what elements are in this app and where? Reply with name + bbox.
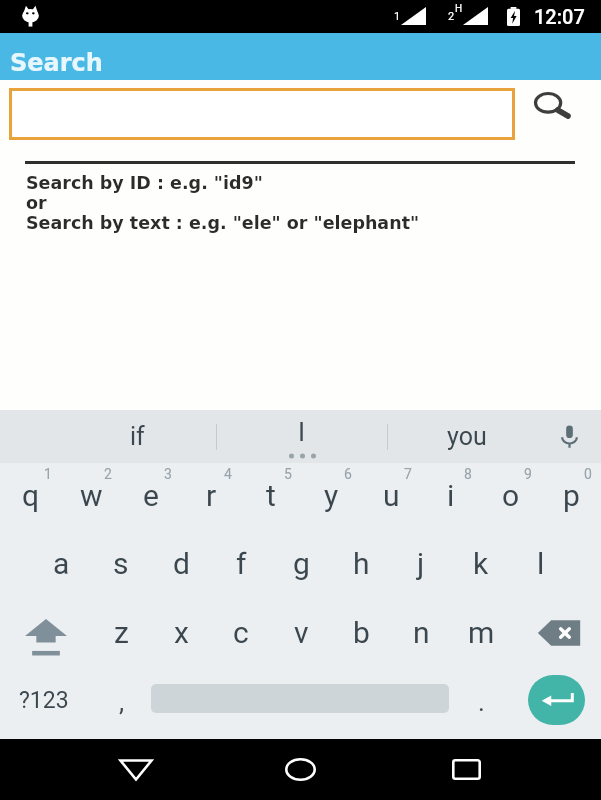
button[interactable]: Shift xyxy=(0,601,91,670)
staticText: or xyxy=(26,193,47,213)
staticText: c xyxy=(233,615,249,650)
button[interactable]: if xyxy=(0,410,216,463)
button[interactable]: Enter xyxy=(506,670,601,739)
staticText: 1 xyxy=(394,10,401,23)
button[interactable]: v xyxy=(271,601,331,670)
button[interactable]: . xyxy=(446,670,506,739)
button[interactable]: b xyxy=(331,601,391,670)
staticText: l xyxy=(537,546,545,581)
button[interactable]: s xyxy=(91,532,151,601)
button[interactable]: f xyxy=(211,532,271,601)
button[interactable]: y xyxy=(301,463,361,532)
staticText: . xyxy=(478,687,485,717)
staticText: w xyxy=(80,478,103,513)
staticText: 9 xyxy=(524,466,532,482)
button[interactable]: Recents xyxy=(436,739,497,800)
button[interactable]: Space xyxy=(148,670,446,739)
staticText: 1 xyxy=(44,466,52,482)
button[interactable]: o xyxy=(481,463,541,532)
button[interactable]: n xyxy=(391,601,451,670)
staticText: q xyxy=(22,478,40,513)
button[interactable]: Search xyxy=(528,90,576,138)
button[interactable]: t xyxy=(241,463,301,532)
button[interactable]: Home xyxy=(270,739,331,800)
staticText: 3 xyxy=(164,466,172,482)
staticText: n xyxy=(413,615,430,650)
button[interactable]: i xyxy=(421,463,481,532)
button[interactable]: I xyxy=(217,410,387,463)
staticText: p xyxy=(563,478,580,513)
button[interactable]: e xyxy=(121,463,181,532)
staticText: s xyxy=(113,546,129,581)
staticText: f xyxy=(236,546,247,581)
staticText: r xyxy=(206,478,217,513)
staticText: i xyxy=(447,478,455,513)
staticText: t xyxy=(266,478,276,513)
button[interactable]: g xyxy=(271,532,331,601)
staticText: j xyxy=(417,546,425,581)
button[interactable]: ?123 xyxy=(0,670,88,739)
button[interactable]: w xyxy=(61,463,121,532)
button[interactable]: x xyxy=(151,601,211,670)
button[interactable]: m xyxy=(451,601,511,670)
staticText: k xyxy=(473,546,489,581)
staticText: 8 xyxy=(464,466,472,482)
staticText: b xyxy=(353,615,370,650)
staticText: Search xyxy=(10,49,103,77)
button[interactable]: Backspace xyxy=(511,601,601,670)
staticText: x xyxy=(174,615,189,650)
staticText: Search by ID : e.g. "id9" xyxy=(26,173,263,193)
staticText: 12:07 xyxy=(534,5,585,28)
staticText: you xyxy=(447,422,487,451)
button[interactable]: u xyxy=(361,463,421,532)
staticText: h xyxy=(353,546,370,581)
staticText: 2 xyxy=(448,10,455,23)
staticText: u xyxy=(383,478,400,513)
button[interactable]: Back xyxy=(105,739,166,800)
staticText: , xyxy=(119,687,125,717)
staticText: 7 xyxy=(404,466,412,482)
staticText: 4 xyxy=(224,466,232,482)
button[interactable]: c xyxy=(211,601,271,670)
button[interactable]: k xyxy=(451,532,511,601)
staticText: 2 xyxy=(104,466,112,482)
staticText: d xyxy=(173,546,190,581)
staticText: y xyxy=(324,478,339,513)
button[interactable]: , xyxy=(88,670,148,739)
staticText: v xyxy=(294,615,309,650)
button[interactable]: h xyxy=(331,532,391,601)
button[interactable]: Voice input xyxy=(546,410,601,463)
button[interactable]: r xyxy=(181,463,241,532)
button[interactable] xyxy=(9,88,515,140)
button[interactable]: l xyxy=(511,532,571,601)
staticText: a xyxy=(53,546,70,581)
staticText: z xyxy=(114,615,129,650)
staticText: 0 xyxy=(584,466,592,482)
button[interactable]: j xyxy=(391,532,451,601)
staticText: e xyxy=(143,478,159,513)
staticText: Search by text : e.g. "ele" or "elephant… xyxy=(26,213,420,233)
staticText: if xyxy=(130,422,145,451)
button[interactable]: d xyxy=(151,532,211,601)
button[interactable]: you xyxy=(388,410,546,463)
staticText: ?123 xyxy=(19,687,69,714)
button[interactable]: p xyxy=(541,463,601,532)
staticText: 6 xyxy=(344,466,352,482)
staticText: o xyxy=(502,478,520,513)
staticText: 5 xyxy=(284,466,292,482)
button[interactable]: z xyxy=(91,601,151,670)
staticText: I xyxy=(298,417,306,447)
button[interactable]: q xyxy=(0,463,61,532)
staticText: m xyxy=(468,615,495,650)
button[interactable]: a xyxy=(31,532,91,601)
staticText: H xyxy=(455,3,463,15)
staticText: g xyxy=(293,546,310,581)
